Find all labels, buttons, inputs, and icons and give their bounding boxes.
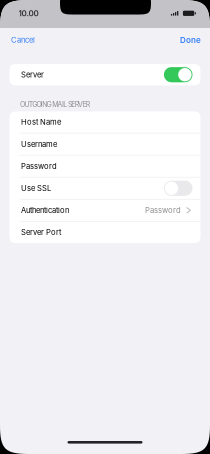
button[interactable]: Use SSL [9,178,200,199]
staticText: OUTGOING MAIL SERVER [20,100,90,109]
staticText: Password [145,206,181,215]
staticText: Done [180,35,201,45]
staticText: Cancel [11,35,35,45]
staticText: Username [21,140,57,149]
button[interactable]: Done [180,30,210,50]
staticText: Password [21,162,57,171]
staticText: Server Port [21,228,61,237]
staticText: Use SSL [21,184,51,193]
button[interactable]: Cancel [0,30,35,50]
staticText: Host Name [21,117,61,127]
staticText: 10.00 [19,8,39,18]
staticText: Server [21,70,44,79]
button[interactable]: Server [9,64,200,85]
staticText: Authentication [21,206,69,215]
button[interactable]: Authentication [9,200,200,221]
